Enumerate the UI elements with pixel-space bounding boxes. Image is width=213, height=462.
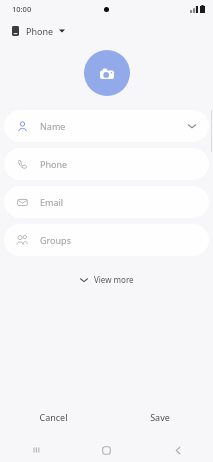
button[interactable]: Back	[142, 438, 213, 462]
button[interactable]: Name	[4, 110, 209, 142]
button[interactable]: Cancel	[0, 402, 106, 432]
button[interactable]: Save	[106, 402, 213, 432]
button[interactable]: Home	[71, 438, 142, 462]
button[interactable]: Add contact photo	[84, 50, 130, 96]
button[interactable]: Phone	[4, 148, 209, 180]
staticText: Cancel	[39, 411, 68, 423]
staticText: Phone	[26, 25, 54, 37]
button[interactable]: Email	[4, 186, 209, 218]
button[interactable]: Groups	[4, 224, 209, 256]
staticText: View more	[94, 274, 134, 285]
button[interactable]: Recent apps	[0, 438, 71, 462]
staticText: Phone	[40, 158, 68, 170]
staticText: Name	[40, 120, 66, 132]
staticText: 10:00	[12, 4, 32, 14]
staticText: Save	[150, 411, 170, 423]
button[interactable]: View more	[0, 268, 213, 291]
staticText: Email	[40, 196, 64, 208]
staticText: Groups	[40, 234, 71, 246]
button[interactable]: Phone	[0, 18, 213, 44]
